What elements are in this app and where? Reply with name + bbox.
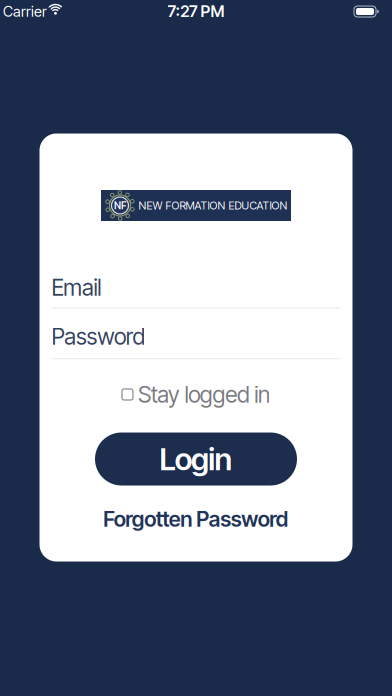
staticText: NEW FORMATION EDUCATION [138,199,287,212]
button[interactable]: Stay logged in [122,381,270,408]
staticText: 7:27 PM [168,2,224,21]
staticText: Carrier [3,3,47,20]
staticText: Forgotten Password [103,506,289,532]
button[interactable]: Forgotten Password [103,506,289,532]
button[interactable]: Email [51,276,340,308]
button[interactable]: Password [51,325,340,359]
staticText: Login [160,440,232,477]
staticText: NF [114,199,126,212]
staticText: Password [51,323,145,350]
button[interactable]: Login [95,432,297,485]
staticText: Email [51,274,101,301]
staticText: Stay logged in [138,381,270,408]
